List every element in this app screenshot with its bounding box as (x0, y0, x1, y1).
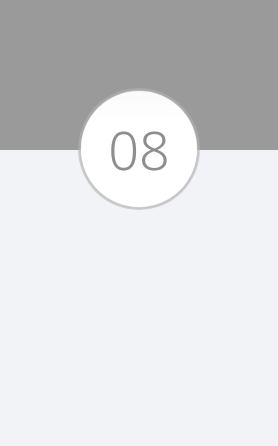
staticText: 08 (108, 112, 170, 186)
button[interactable]: Day 08 (78, 88, 200, 210)
